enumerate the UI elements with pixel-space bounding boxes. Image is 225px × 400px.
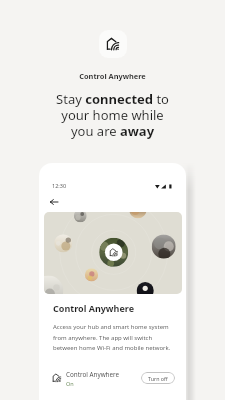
staticText: Stay connected to your home while you ar…	[56, 90, 169, 139]
staticText: Control Anywhere	[79, 71, 146, 81]
button[interactable]: Back	[47, 195, 61, 209]
staticText: On	[66, 380, 74, 387]
staticText: Control Anywhere	[53, 302, 135, 314]
staticText: Control Anywhere	[66, 370, 120, 379]
staticText: Turn off	[148, 375, 168, 382]
button[interactable]: Control Anywhere	[47, 366, 175, 390]
staticText: 12:30	[52, 182, 67, 189]
button[interactable]: Turn off	[141, 372, 175, 384]
staticText: Access your hub and smart home system fr…	[53, 323, 171, 352]
